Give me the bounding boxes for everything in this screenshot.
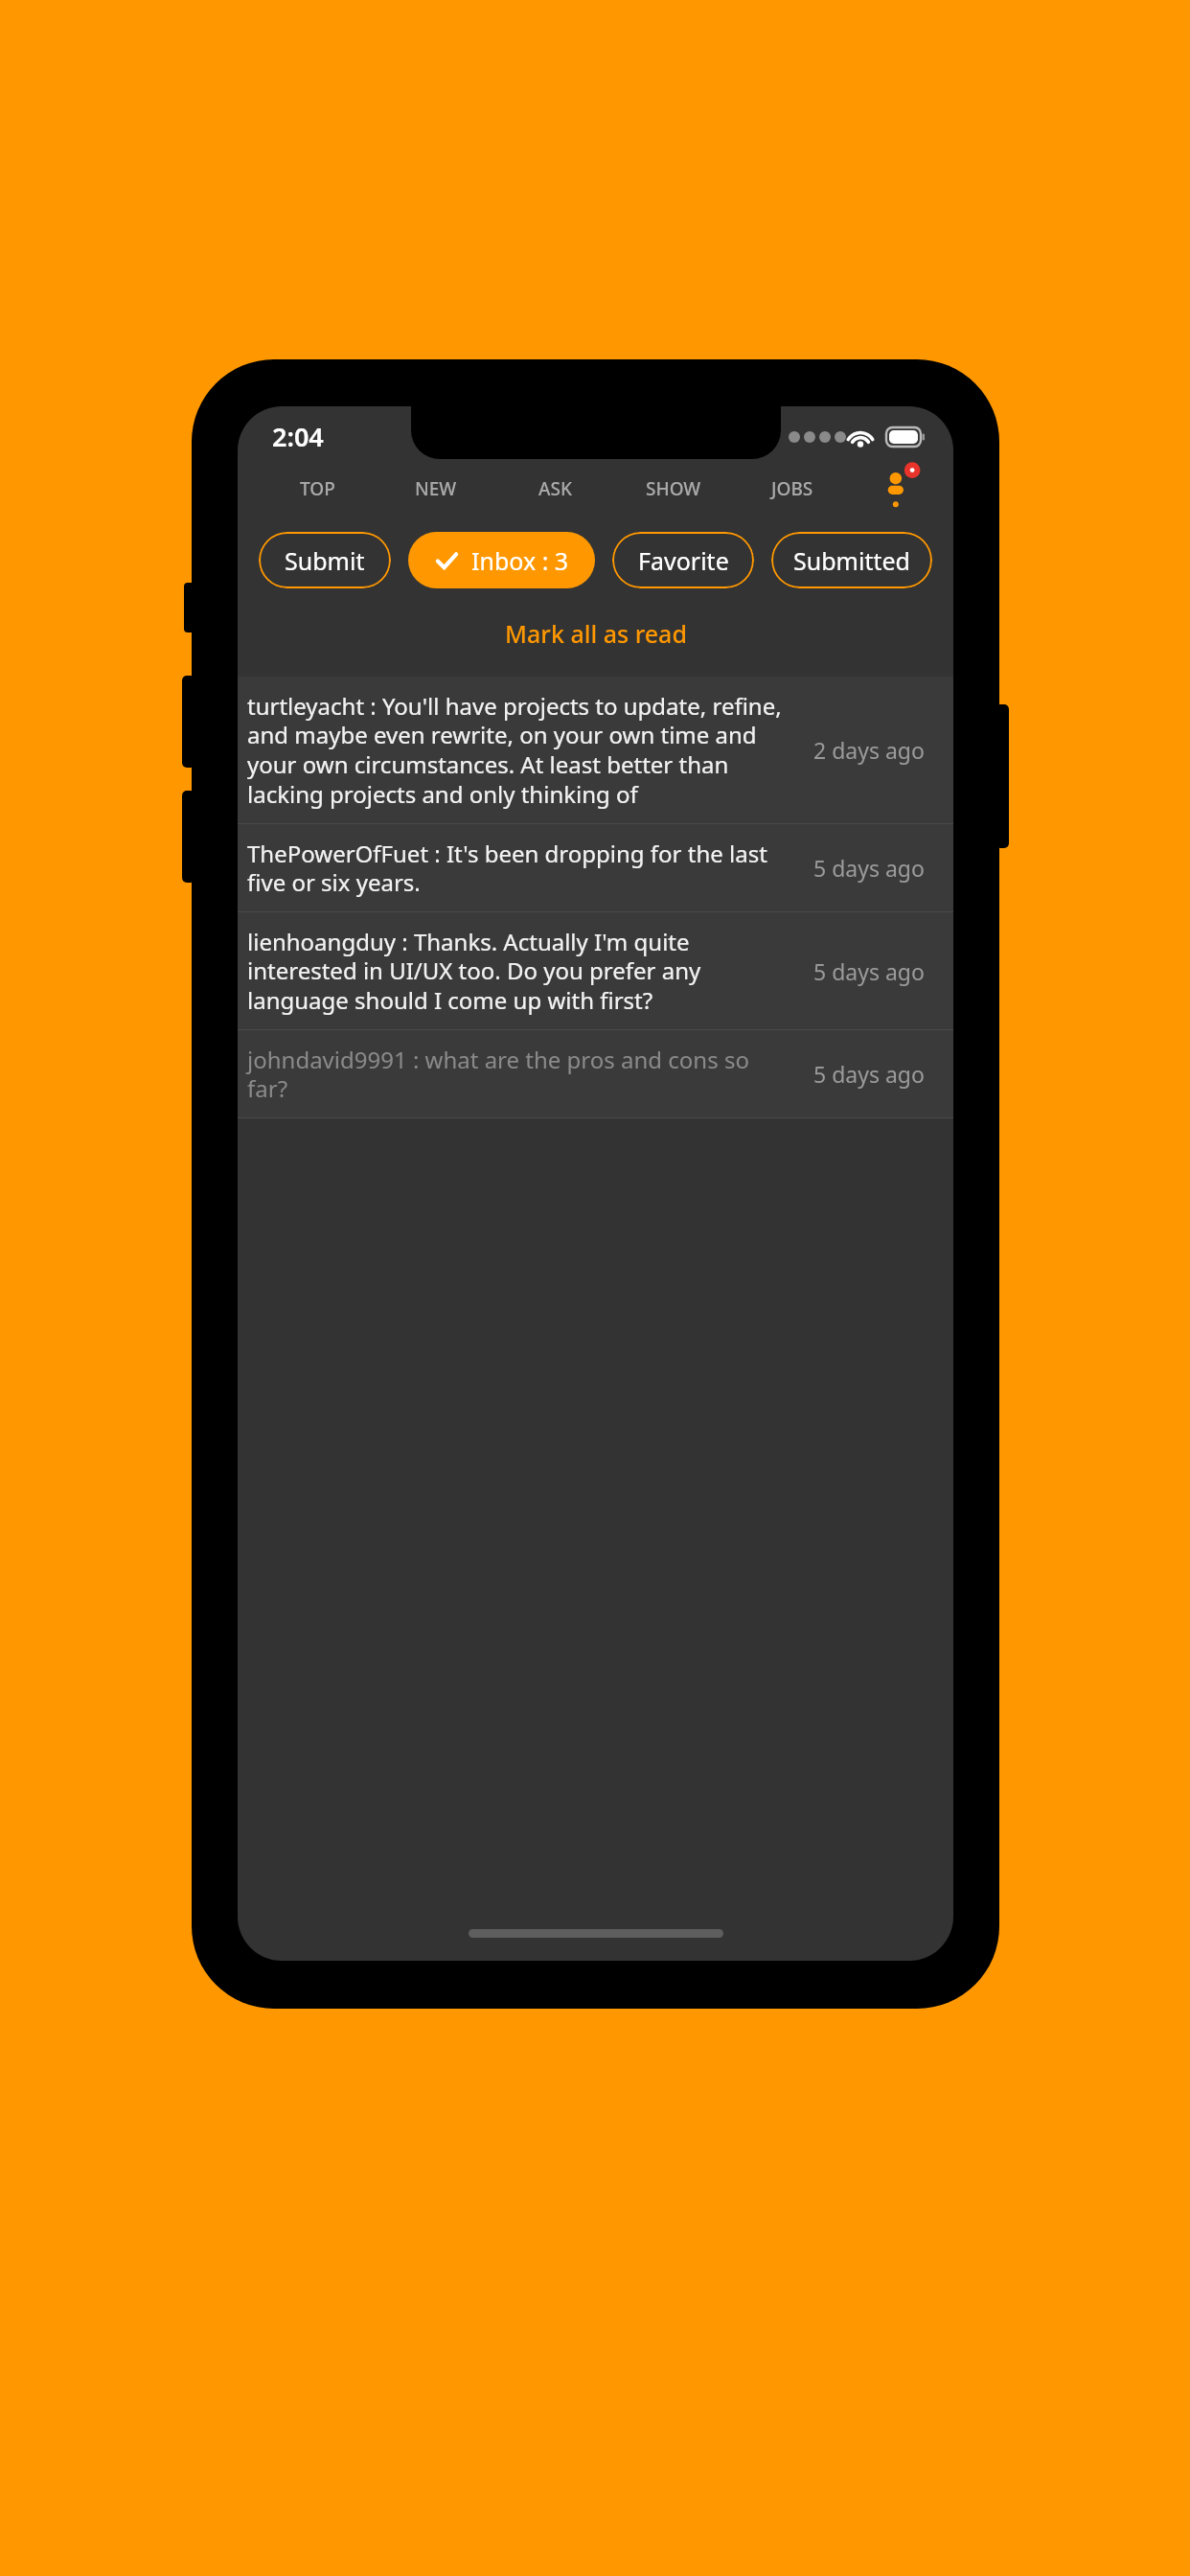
staticText: 5 days ago [813, 956, 925, 986]
button[interactable]: ThePowerOfFuet : It's been dropping for … [238, 824, 953, 911]
staticText: TOP [300, 476, 335, 501]
staticText: JOBS [771, 476, 813, 501]
button[interactable]: Mark all as read [490, 611, 702, 655]
staticText: 5 days ago [813, 1059, 925, 1089]
button[interactable]: TOP [259, 459, 377, 518]
staticText: Inbox : 3 [471, 544, 569, 577]
staticText: lienhoangduy : Thanks. Actually I'm quit… [247, 926, 785, 1016]
staticText: Favorite [638, 544, 729, 577]
button[interactable]: SHOW [614, 459, 733, 518]
staticText: Mark all as read [505, 617, 687, 650]
button[interactable]: Profile [852, 459, 944, 518]
button[interactable]: Favorite [612, 532, 754, 588]
button[interactable]: Inbox : 3 [408, 532, 595, 588]
button[interactable]: johndavid9991 : what are the pros and co… [238, 1030, 953, 1117]
staticText: Submitted [793, 544, 910, 577]
button[interactable]: lienhoangduy : Thanks. Actually I'm quit… [238, 912, 953, 1029]
staticText: 2:04 [272, 419, 324, 454]
staticText: 5 days ago [813, 853, 925, 883]
button[interactable]: ASK [495, 459, 614, 518]
staticText: SHOW [646, 476, 701, 501]
staticText: 2 days ago [813, 735, 925, 765]
button[interactable]: Submitted [771, 532, 932, 588]
staticText: turtleyacht : You'll have projects to up… [247, 690, 785, 810]
button[interactable]: JOBS [733, 459, 852, 518]
staticText: NEW [415, 476, 457, 501]
staticText: Submit [285, 544, 365, 577]
staticText: ThePowerOfFuet : It's been dropping for … [247, 838, 785, 898]
button[interactable]: Submit [259, 532, 391, 588]
staticText: ASK [538, 476, 572, 501]
button[interactable]: turtleyacht : You'll have projects to up… [238, 677, 953, 823]
button[interactable]: NEW [377, 459, 495, 518]
staticText: johndavid9991 : what are the pros and co… [247, 1044, 785, 1104]
